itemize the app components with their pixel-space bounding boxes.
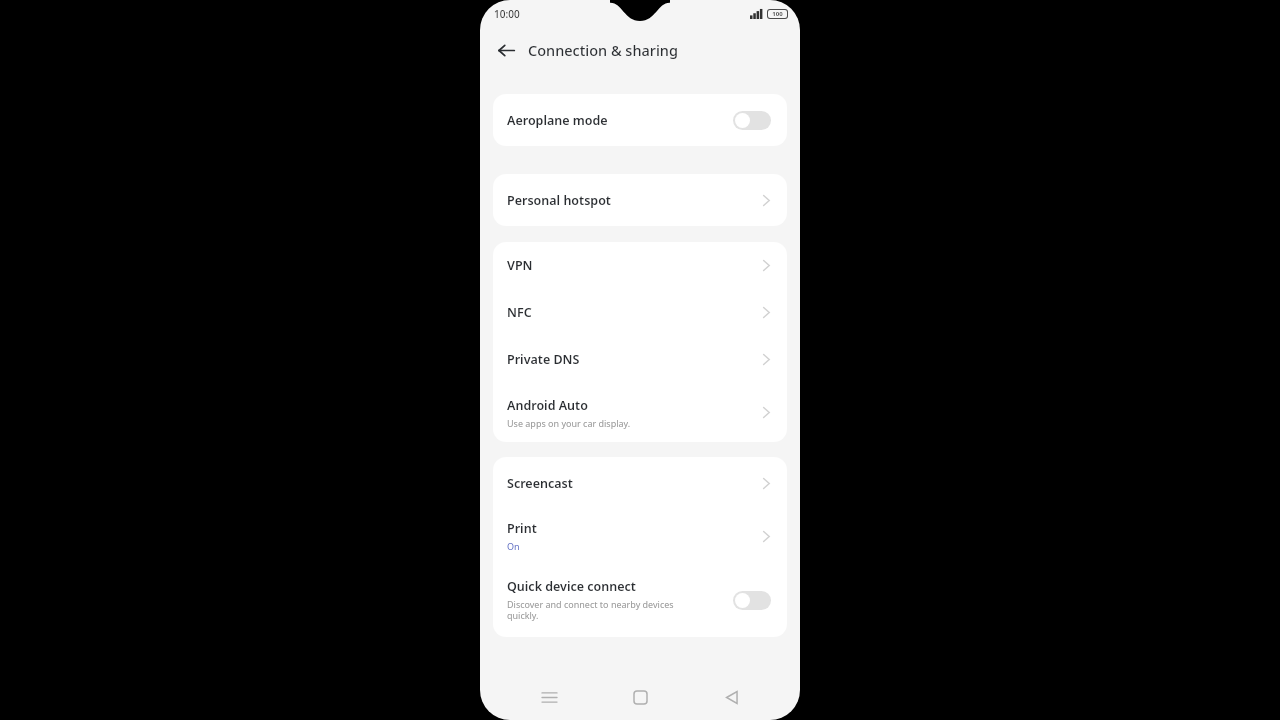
button[interactable]: Quick device connect (493, 563, 787, 637)
staticText: Print (507, 520, 537, 537)
button[interactable]: Print (493, 509, 787, 563)
staticText: 100 (772, 10, 783, 18)
button[interactable]: Recent apps (526, 674, 572, 720)
button[interactable]: NFC (493, 289, 787, 336)
button[interactable]: Home (617, 674, 663, 720)
staticText: Discover and connect to nearby devices q… (507, 598, 674, 622)
button[interactable]: Screencast (493, 457, 787, 509)
staticText: On (507, 540, 520, 552)
button[interactable]: VPN (493, 242, 787, 289)
staticText: Use apps on your car display. (507, 417, 631, 429)
staticText: Quick device connect (507, 578, 636, 595)
staticText: Screencast (507, 475, 573, 492)
staticText: Android Auto (507, 397, 588, 414)
staticText: NFC (507, 304, 532, 321)
staticText: Personal hotspot (507, 192, 611, 209)
staticText: Private DNS (507, 351, 580, 368)
button[interactable]: Toggle (733, 591, 771, 610)
staticText: Aeroplane mode (507, 112, 608, 129)
button[interactable]: Toggle (733, 111, 771, 130)
button[interactable]: Back (488, 32, 524, 68)
button[interactable]: Private DNS (493, 336, 787, 383)
staticText: Connection & sharing (528, 40, 678, 60)
button[interactable]: Back (709, 674, 755, 720)
staticText: 10:00 (494, 7, 520, 21)
button[interactable]: Android Auto (493, 383, 787, 442)
staticText: VPN (507, 257, 533, 274)
button[interactable]: Aeroplane mode (493, 94, 787, 146)
button[interactable]: Personal hotspot (493, 174, 787, 226)
